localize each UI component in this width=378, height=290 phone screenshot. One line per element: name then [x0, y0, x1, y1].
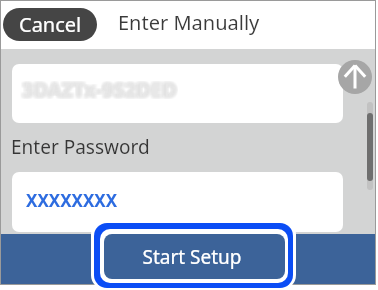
staticText: Enter Password: [11, 134, 150, 160]
staticText: 3DAZTx-9S2DED: [24, 78, 179, 105]
staticText: 3DAZTx-9S2DED: [22, 75, 177, 102]
staticText: 3DAZTx-9S2DED: [22, 77, 177, 104]
staticText: 3DAZTx-9S2DED: [21, 77, 176, 104]
staticText: 3DAZTx-9S2DED: [22, 78, 177, 105]
staticText: 3DAZTx-9S2DED: [22, 76, 177, 103]
staticText: 3DAZTx-9S2DED: [20, 78, 175, 105]
staticText: 3DAZTx-9S2DED: [24, 74, 179, 101]
staticText: 3DAZTx-9S2DED: [21, 74, 176, 101]
staticText: Cancel: [19, 11, 82, 38]
staticText: 3DAZTx-9S2DED: [20, 75, 175, 102]
staticText: 3DAZTx-9S2DED: [23, 77, 178, 104]
staticText: 3DAZTx-9S2DED: [23, 78, 178, 105]
staticText: 3DAZTx-9S2DED: [21, 76, 176, 103]
staticText: 3DAZTx-9S2DED: [20, 74, 175, 101]
staticText: 3DAZTx-9S2DED: [23, 75, 178, 102]
staticText: 3DAZTx-9S2DED: [20, 77, 175, 104]
button[interactable]: Cancel: [3, 8, 97, 41]
button[interactable]: XXXXXXXX: [12, 172, 343, 232]
staticText: 3DAZTx-9S2DED: [21, 78, 176, 105]
staticText: Start Setup: [142, 244, 242, 270]
staticText: 3DAZTx-9S2DED: [23, 76, 178, 103]
button[interactable]: Start Setup: [91, 219, 296, 290]
staticText: 3DAZTx-9S2DED: [24, 77, 179, 104]
button[interactable]: 3DAZTx-9S2DED: [12, 64, 343, 123]
staticText: XXXXXXXX: [26, 189, 118, 212]
staticText: 3DAZTx-9S2DED: [23, 74, 178, 101]
staticText: 3DAZTx-9S2DED: [21, 75, 176, 102]
button[interactable]: Scroll to top: [338, 60, 372, 94]
staticText: Enter Manually: [118, 9, 260, 36]
staticText: 3DAZTx-9S2DED: [24, 75, 179, 102]
staticText: 3DAZTx-9S2DED: [20, 76, 175, 103]
staticText: 3DAZTx-9S2DED: [24, 76, 179, 103]
staticText: 3DAZTx-9S2DED: [22, 74, 177, 101]
